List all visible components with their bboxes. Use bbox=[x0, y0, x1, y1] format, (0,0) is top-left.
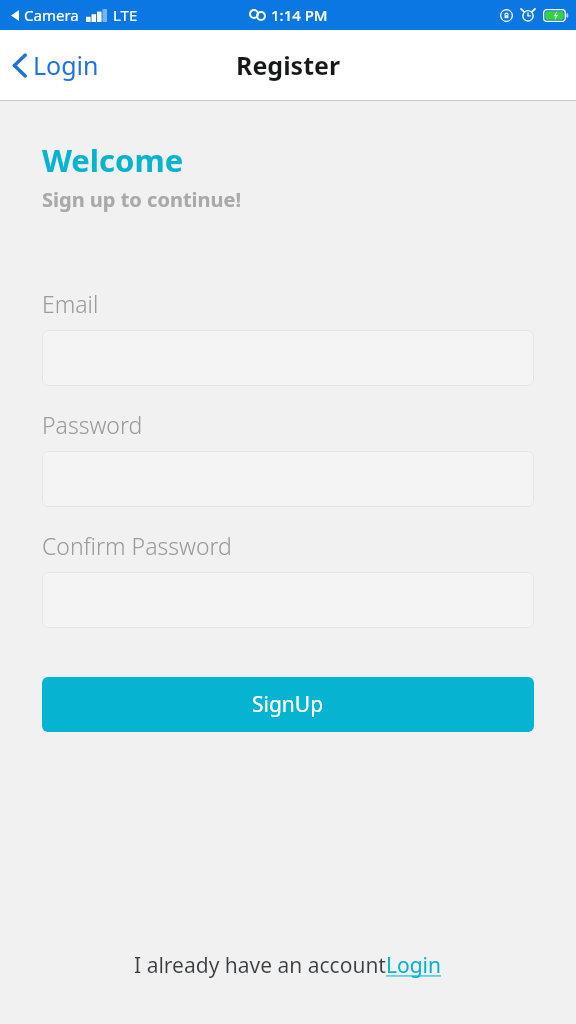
button[interactable] bbox=[42, 572, 534, 628]
staticText: 1:14 PM bbox=[271, 5, 328, 25]
staticText: Password bbox=[42, 409, 143, 440]
staticText: Login bbox=[386, 951, 442, 980]
button[interactable] bbox=[42, 330, 534, 386]
staticText: Sign up to continue! bbox=[42, 186, 242, 213]
button[interactable]: Login bbox=[0, 40, 111, 90]
button[interactable]: SignUp bbox=[42, 677, 534, 732]
staticText: LTE bbox=[113, 5, 138, 25]
staticText: Welcome bbox=[42, 139, 184, 181]
staticText: Email bbox=[42, 288, 99, 319]
staticText: Confirm Password bbox=[42, 530, 232, 561]
staticText: SignUp bbox=[252, 690, 324, 719]
staticText: Login bbox=[33, 48, 99, 82]
button[interactable]: Login bbox=[386, 951, 442, 980]
staticText: I already have an account bbox=[134, 951, 386, 980]
staticText: Register bbox=[236, 48, 341, 82]
button[interactable] bbox=[42, 451, 534, 507]
staticText: Camera bbox=[24, 5, 79, 25]
